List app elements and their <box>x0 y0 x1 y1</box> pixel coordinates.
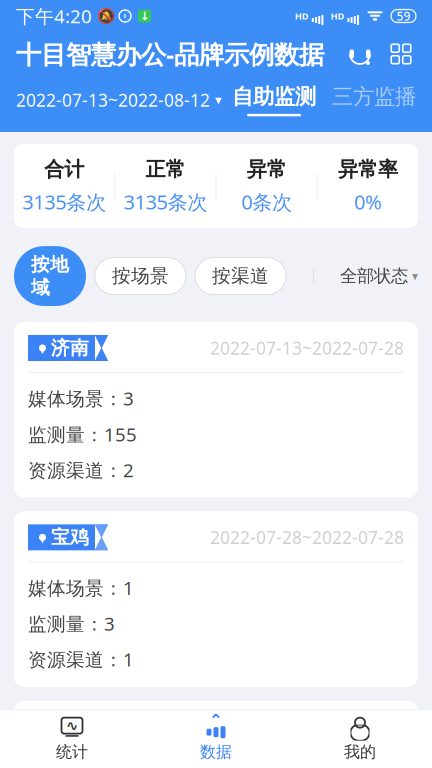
staticText: 十目智慧办公-品牌示例数据 <box>16 37 324 71</box>
staticText: 媒体场景：3 <box>28 386 134 411</box>
staticText: ⌃ <box>208 710 223 730</box>
button[interactable]: 按地域 <box>14 246 86 306</box>
staticText: 0% <box>354 189 382 215</box>
staticText: 0条次 <box>241 189 292 215</box>
staticText: 3135条次 <box>22 189 106 215</box>
staticText: 宝鸡 <box>51 526 89 549</box>
staticText: 全部状态 <box>340 265 408 287</box>
staticText: 合计 <box>44 157 84 182</box>
staticText: 媒体场景：1 <box>28 575 134 600</box>
button[interactable]: 全部状态 <box>340 265 418 287</box>
staticText: 2022-07-13~2022-07-27 <box>210 715 404 738</box>
staticText: 资源渠道：1 <box>28 647 134 672</box>
button[interactable]: ▾ <box>14 322 418 497</box>
button[interactable]: ▾ <box>14 511 418 687</box>
staticText: 3135条次 <box>123 189 207 215</box>
staticText: 59 <box>396 8 410 24</box>
staticText: 我的 <box>344 742 376 762</box>
button[interactable]: ⌃ <box>144 709 288 768</box>
staticText: 2022-07-13~2022-07-28 <box>210 336 404 359</box>
staticText: 资源渠道：2 <box>28 458 134 482</box>
button[interactable]: 自助监测 <box>232 84 316 116</box>
button[interactable]: 更多应用 <box>386 39 416 69</box>
button[interactable]: 按渠道 <box>195 258 286 294</box>
staticText: 下午4:20 <box>16 4 92 28</box>
staticText: ▾ <box>215 92 222 107</box>
staticText: ↓ <box>139 9 149 23</box>
button[interactable]: 客服 <box>344 38 376 70</box>
staticText: ▾ <box>412 269 418 283</box>
staticText: 数据 <box>200 742 232 762</box>
staticText: 🔕 <box>97 8 115 24</box>
staticText: ▾ <box>40 535 45 546</box>
button[interactable]: 我的 <box>288 709 432 768</box>
staticText: 按场景 <box>112 265 169 287</box>
staticText: ▾ <box>40 346 45 356</box>
staticText: 自助监测 <box>232 84 316 110</box>
button[interactable]: 三方监播 <box>332 84 416 116</box>
staticText: HD <box>330 10 344 22</box>
staticText: 2022-07-13~2022-08-12 <box>16 88 210 111</box>
staticText: 监测量：3 <box>28 611 115 636</box>
staticText: 2022-07-28~2022-07-28 <box>210 526 404 549</box>
staticText: 按地域 <box>31 253 69 299</box>
staticText: 按渠道 <box>212 265 269 287</box>
button[interactable]: 按场景 <box>95 258 186 294</box>
staticText: 异常率 <box>338 157 398 182</box>
staticText: 正常 <box>145 157 185 182</box>
button[interactable]: ∿ <box>0 709 144 768</box>
button[interactable]: 2022-07-13~2022-08-12 <box>16 88 222 111</box>
staticText: 郑州 <box>51 715 89 738</box>
staticText: 三方监播 <box>332 84 416 110</box>
staticText: 异常 <box>247 157 287 182</box>
button[interactable]: ▾ <box>14 701 418 768</box>
staticText: 监测量：155 <box>28 422 137 447</box>
staticText: 济南 <box>51 336 89 359</box>
staticText: 统计 <box>56 742 88 762</box>
staticText: HD <box>295 10 309 22</box>
staticText: ∿ <box>66 717 78 734</box>
